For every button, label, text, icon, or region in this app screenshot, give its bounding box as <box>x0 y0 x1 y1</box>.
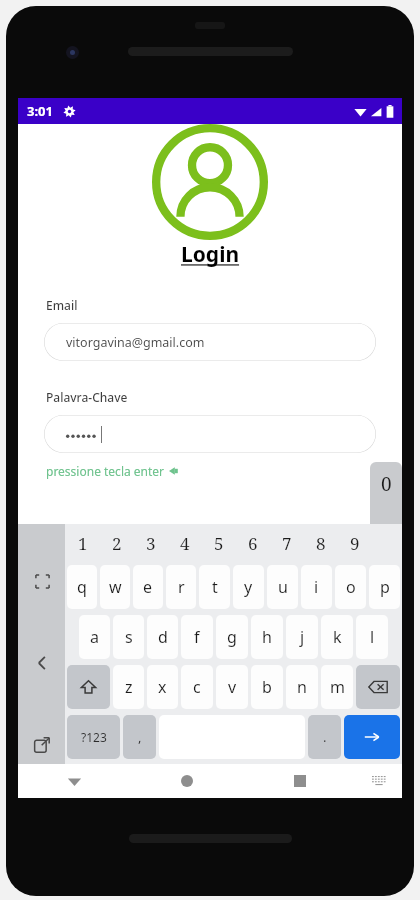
button[interactable]: k <box>321 615 353 659</box>
staticText: 6 <box>248 532 258 555</box>
button[interactable]: , <box>123 715 156 759</box>
button[interactable]: . <box>308 715 341 759</box>
button[interactable]: Backspace <box>356 665 400 709</box>
staticText: m <box>330 676 345 698</box>
staticText: g <box>227 626 237 648</box>
button[interactable]: w <box>100 565 130 609</box>
staticText: z <box>125 676 133 698</box>
staticText: f <box>194 626 200 648</box>
staticText: e <box>143 576 153 598</box>
button[interactable]: ?123 <box>67 715 120 759</box>
button[interactable]: h <box>251 615 283 659</box>
button[interactable]: Resize keyboard <box>27 566 57 596</box>
button[interactable]: u <box>267 565 298 609</box>
button[interactable]: 2 <box>100 524 134 562</box>
button[interactable]: r <box>166 565 196 609</box>
button[interactable]: a <box>79 615 110 659</box>
button[interactable]: m <box>321 665 353 709</box>
button[interactable]: Back <box>18 764 130 798</box>
button[interactable]: Floating keyboard <box>27 730 57 760</box>
staticText: l <box>370 626 375 648</box>
button[interactable]: f <box>181 615 213 659</box>
button[interactable]: e <box>133 565 163 609</box>
staticText: vitorgavina@gmail.com <box>66 334 205 351</box>
button[interactable]: 6 <box>236 524 270 562</box>
button[interactable]: o <box>335 565 366 609</box>
staticText: t <box>212 576 218 598</box>
staticText: p <box>380 576 390 598</box>
staticText: 4 <box>180 532 190 555</box>
staticText: w <box>109 576 122 598</box>
button[interactable]: 5 <box>202 524 236 562</box>
button[interactable]: vitorgavina@gmail.com <box>44 323 376 361</box>
staticText: v <box>228 676 237 698</box>
button[interactable]: v <box>216 665 248 709</box>
staticText: h <box>262 626 272 648</box>
button[interactable]: 3 <box>134 524 168 562</box>
button[interactable]: Back <box>27 648 57 678</box>
staticText: b <box>262 676 272 698</box>
button[interactable]: g <box>216 615 248 659</box>
button[interactable]: s <box>113 615 144 659</box>
button[interactable]: p <box>369 565 400 609</box>
button[interactable]: 4 <box>168 524 202 562</box>
staticText: n <box>297 676 307 698</box>
staticText: o <box>346 576 356 598</box>
staticText: 2 <box>112 532 122 555</box>
staticText: 7 <box>282 532 292 555</box>
staticText: 3 <box>146 532 156 555</box>
staticText: x <box>158 676 167 698</box>
staticText: k <box>333 626 342 648</box>
staticText: y <box>244 576 253 598</box>
button[interactable]: 8 <box>304 524 338 562</box>
button[interactable]: y <box>233 565 264 609</box>
button[interactable]: i <box>301 565 332 609</box>
staticText: s <box>125 626 133 648</box>
staticText: Email <box>46 297 78 313</box>
button[interactable]: 9 <box>338 524 372 562</box>
button[interactable]: 7 <box>270 524 304 562</box>
staticText: j <box>300 626 305 648</box>
staticText: ?123 <box>81 729 107 745</box>
staticText: Palavra-Chave <box>46 389 128 405</box>
button[interactable]: Home <box>130 764 243 798</box>
button[interactable]: b <box>251 665 283 709</box>
staticText: 9 <box>350 532 360 555</box>
button[interactable]: n <box>286 665 318 709</box>
button[interactable]: Recent apps <box>243 764 356 798</box>
button[interactable]: c <box>181 665 213 709</box>
staticText: c <box>193 676 201 698</box>
button[interactable]: d <box>147 615 178 659</box>
button[interactable]: 1 <box>65 524 100 562</box>
button[interactable]: z <box>113 665 144 709</box>
staticText: . <box>323 728 327 746</box>
button[interactable]: q <box>67 565 97 609</box>
staticText: 1 <box>78 532 88 555</box>
staticText: 8 <box>316 532 326 555</box>
staticText: 3:01 <box>27 102 53 120</box>
staticText: d <box>158 626 168 648</box>
staticText: u <box>278 576 288 598</box>
staticText: q <box>77 576 87 598</box>
button[interactable]: Switch keyboard <box>356 764 402 798</box>
staticText: Login <box>181 240 240 269</box>
button[interactable]: Enter <box>344 715 400 759</box>
button[interactable]: x <box>147 665 178 709</box>
staticText: 0 <box>381 471 392 497</box>
button[interactable]: Shift <box>67 665 110 709</box>
button[interactable] <box>44 415 376 453</box>
staticText: a <box>90 626 99 648</box>
staticText: , <box>138 728 142 746</box>
staticText: 5 <box>214 532 224 555</box>
button[interactable]: t <box>199 565 230 609</box>
staticText: pressione tecla enter <box>46 463 165 479</box>
staticText: i <box>314 576 319 598</box>
staticText: r <box>178 576 185 598</box>
button[interactable]: l <box>356 615 388 659</box>
button[interactable]: j <box>286 615 318 659</box>
button[interactable]: Zero key <box>370 462 402 580</box>
